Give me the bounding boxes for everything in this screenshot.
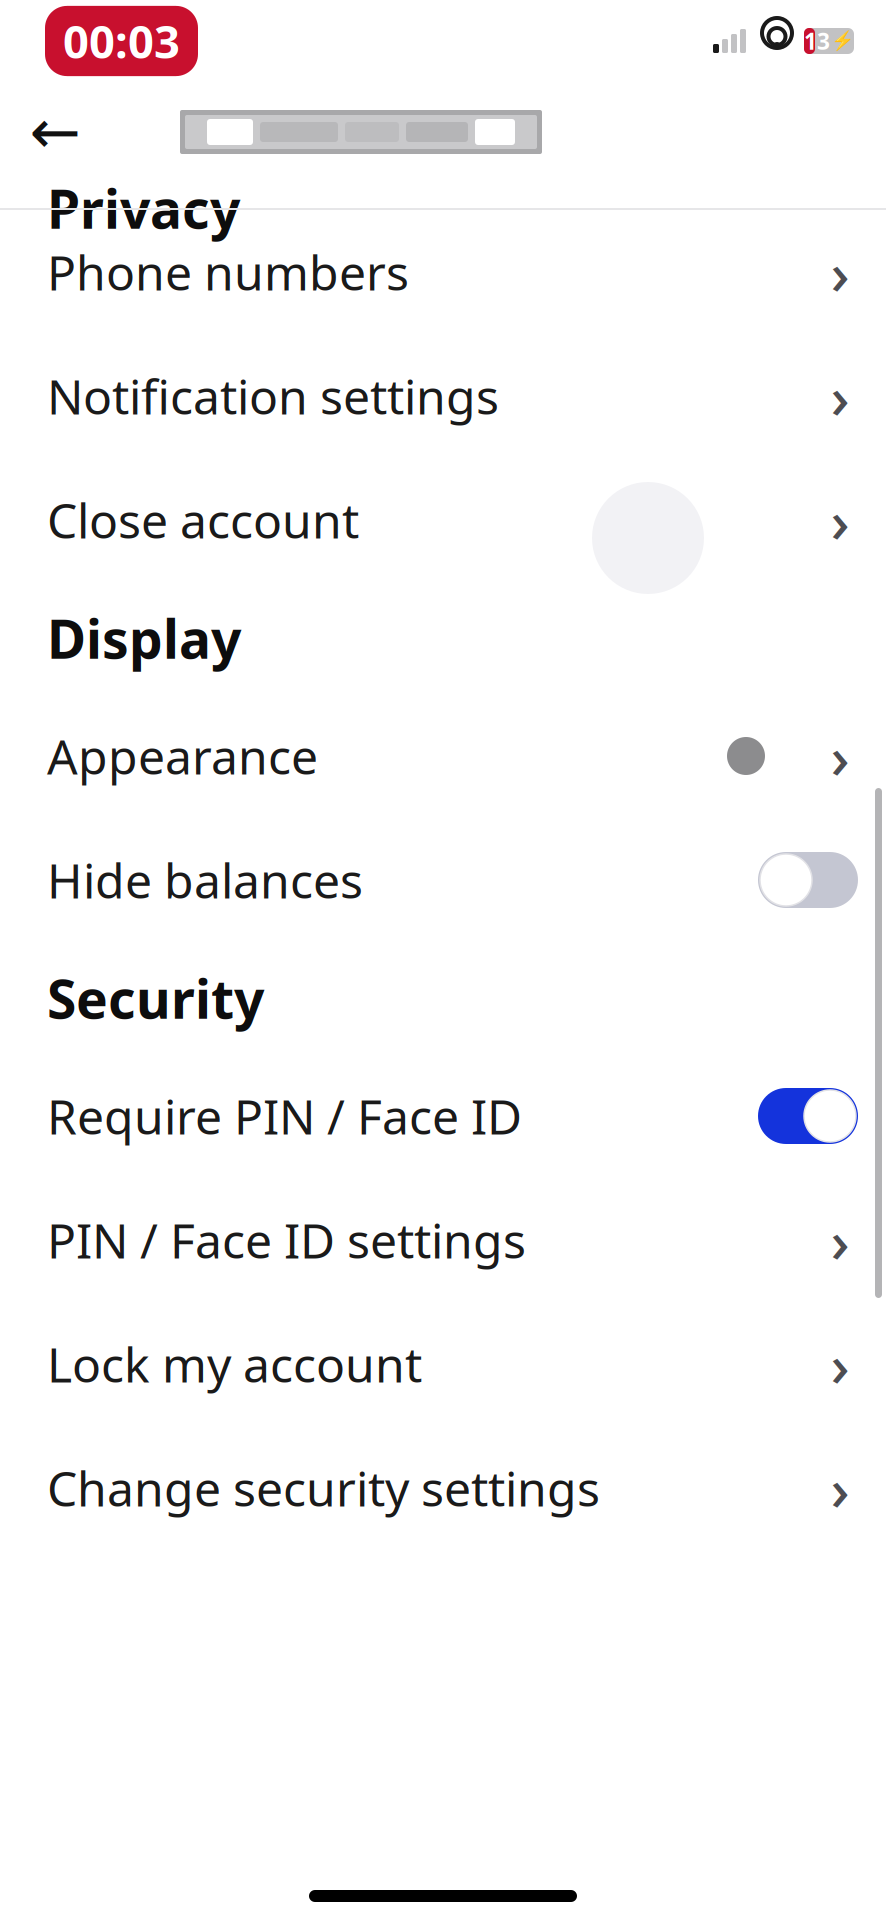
staticText: Require PIN / Face ID bbox=[47, 1084, 522, 1148]
staticText: › bbox=[830, 357, 849, 435]
staticText: › bbox=[830, 1201, 849, 1279]
staticText: › bbox=[830, 233, 849, 311]
staticText: PIN / Face ID settings bbox=[47, 1208, 526, 1272]
staticText: Lock my account bbox=[47, 1332, 422, 1396]
staticText: Close account bbox=[47, 488, 359, 552]
button[interactable]: Phone numbers bbox=[0, 210, 886, 334]
staticText: Appearance bbox=[47, 724, 318, 788]
button[interactable]: Require PIN / Face ID bbox=[0, 1054, 886, 1178]
button[interactable]: PIN / Face ID settings bbox=[0, 1178, 886, 1302]
button[interactable]: Back bbox=[18, 95, 92, 169]
button[interactable]: Notification settings bbox=[0, 334, 886, 458]
button[interactable]: Change security settings bbox=[0, 1426, 886, 1550]
staticText: Security bbox=[47, 963, 264, 1033]
staticText: Display bbox=[47, 603, 241, 673]
staticText: Hide balances bbox=[47, 848, 363, 912]
button[interactable]: Lock my account bbox=[0, 1302, 886, 1426]
staticText: 00:03 bbox=[63, 11, 180, 71]
staticText: › bbox=[830, 481, 849, 559]
staticText: › bbox=[830, 1325, 849, 1403]
staticText: ← bbox=[29, 97, 80, 167]
staticText: Privacy bbox=[47, 173, 240, 243]
staticText: › bbox=[830, 1449, 849, 1527]
staticText: Notification settings bbox=[47, 364, 499, 428]
button[interactable]: Close account bbox=[0, 458, 886, 582]
staticText: › bbox=[830, 717, 849, 795]
staticText: 13 bbox=[804, 26, 830, 56]
staticText: Phone numbers bbox=[47, 240, 409, 304]
staticText: Change security settings bbox=[47, 1456, 600, 1520]
button[interactable]: Hide balances bbox=[0, 818, 886, 942]
staticText: ⚡ bbox=[831, 30, 854, 52]
button[interactable]: Appearance bbox=[0, 694, 886, 818]
